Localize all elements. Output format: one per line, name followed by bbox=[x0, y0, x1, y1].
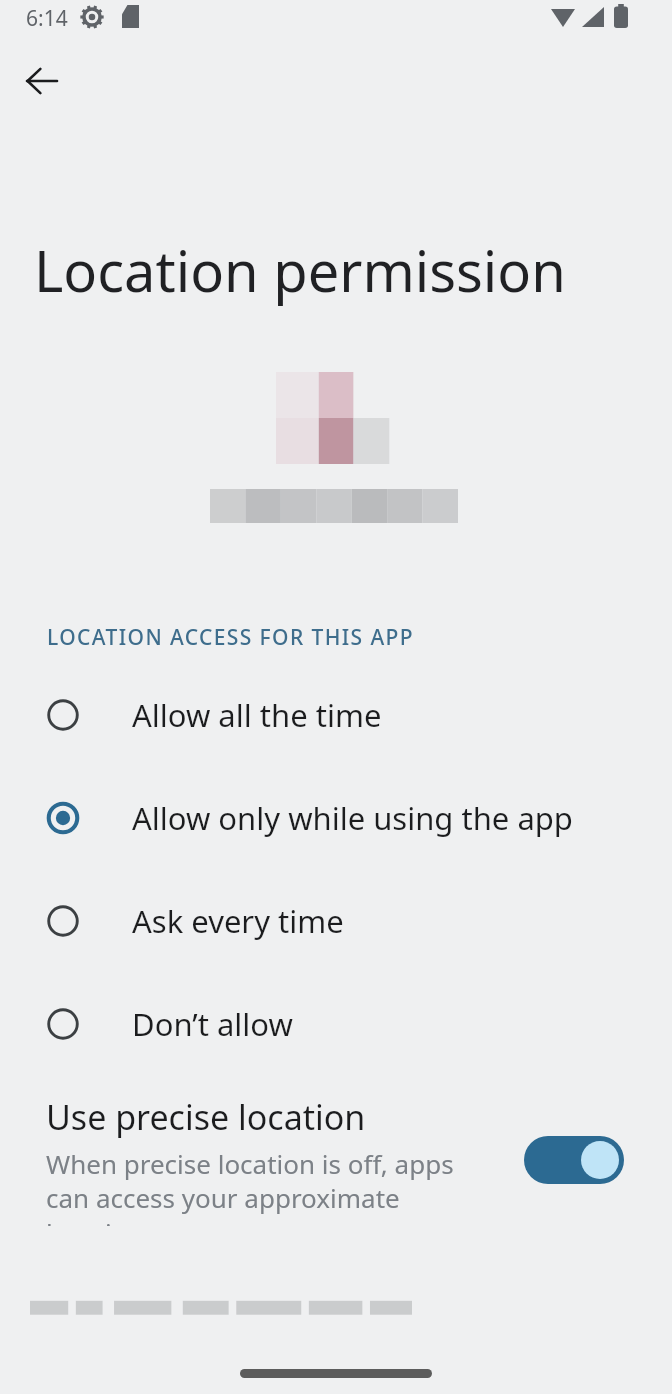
button[interactable]: Don’t allow bbox=[0, 990, 672, 1058]
button[interactable]: Use precise location bbox=[0, 1094, 672, 1226]
staticText: When precise location is off, apps can a… bbox=[46, 1146, 486, 1226]
staticText: Location permission bbox=[34, 232, 566, 308]
staticText: Allow all the time bbox=[132, 694, 382, 736]
staticText: Ask every time bbox=[132, 900, 344, 942]
staticText: 6:14 bbox=[26, 4, 68, 33]
staticText: Don’t allow bbox=[132, 1003, 293, 1045]
button[interactable]: Use precise location bbox=[524, 1136, 624, 1184]
staticText: Use precise location bbox=[46, 1094, 366, 1140]
staticText: LOCATION ACCESS FOR THIS APP bbox=[47, 623, 414, 652]
button[interactable]: Allow all the time bbox=[0, 681, 672, 749]
staticText: Allow only while using the app bbox=[132, 797, 573, 839]
button[interactable]: Allow only while using the app bbox=[0, 784, 672, 852]
button[interactable]: Back bbox=[9, 48, 75, 114]
button[interactable]: Ask every time bbox=[0, 887, 672, 955]
